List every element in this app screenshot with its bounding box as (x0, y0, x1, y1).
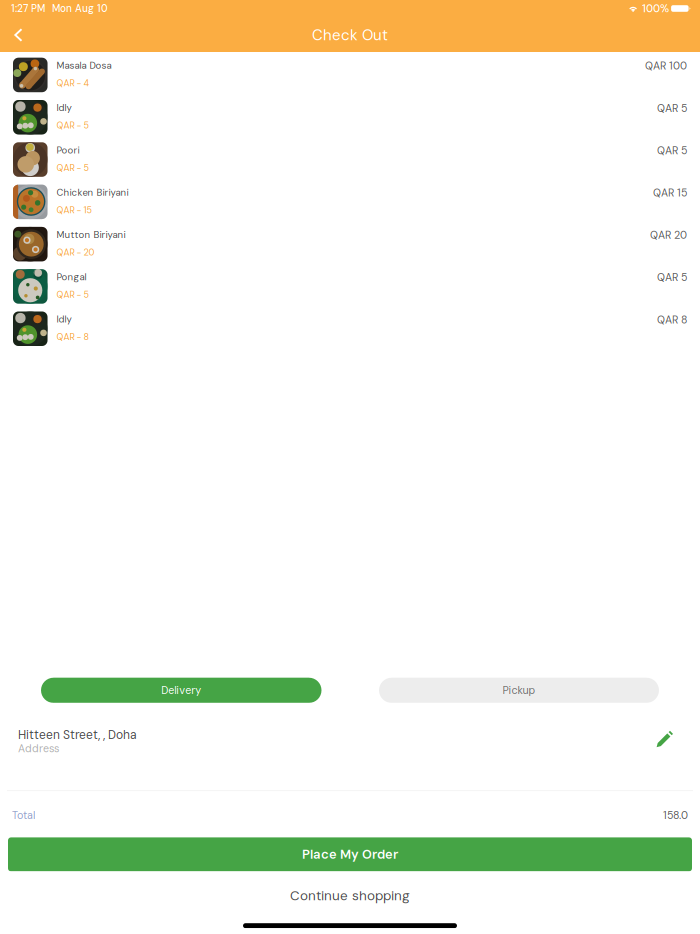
staticText: Idly (56, 313, 71, 326)
staticText: QAR 8 (657, 313, 687, 327)
staticText: Continue shopping (290, 887, 410, 904)
staticText: Delivery (161, 683, 201, 697)
staticText: QAR - 5 (56, 120, 88, 131)
button[interactable]: Place My Order (8, 837, 692, 871)
staticText: QAR 15 (653, 186, 687, 200)
staticText: Pickup (502, 683, 535, 697)
button[interactable]: Back (0, 20, 35, 50)
button[interactable]: Delivery (41, 678, 321, 703)
staticText: Idly (56, 102, 71, 114)
staticText: Check Out (312, 25, 388, 45)
staticText: QAR - 5 (56, 162, 88, 174)
staticText: Poori (56, 144, 79, 156)
staticText: QAR - 5 (56, 289, 88, 301)
staticText: QAR - 20 (56, 246, 94, 258)
staticText: Address (18, 742, 59, 756)
button[interactable]: Pickup (379, 678, 659, 703)
staticText: Mon Aug 10 (52, 2, 108, 15)
staticText: 158.0 (663, 808, 688, 822)
staticText: Chicken Biriyani (56, 186, 128, 199)
staticText: QAR - 8 (56, 331, 88, 343)
staticText: Mutton Biriyani (56, 228, 125, 241)
staticText: QAR 100 (645, 59, 687, 73)
staticText: Total (12, 808, 35, 822)
staticText: QAR - 4 (56, 77, 89, 89)
staticText: Place My Order (302, 846, 398, 863)
staticText: Pongal (56, 271, 86, 283)
staticText: QAR 5 (657, 101, 687, 115)
staticText: Hitteen Street, , Doha (18, 727, 137, 743)
staticText: 1:27 PM (11, 2, 45, 15)
staticText: QAR 5 (657, 270, 687, 284)
button[interactable]: Continue shopping (0, 887, 700, 905)
staticText: QAR 5 (657, 144, 687, 157)
staticText: Masala Dosa (56, 59, 111, 72)
staticText: QAR - 15 (56, 204, 91, 216)
staticText: QAR 20 (650, 228, 687, 242)
staticText: 100% (642, 2, 669, 15)
button[interactable]: Hitteen Street, , Doha (0, 726, 700, 756)
